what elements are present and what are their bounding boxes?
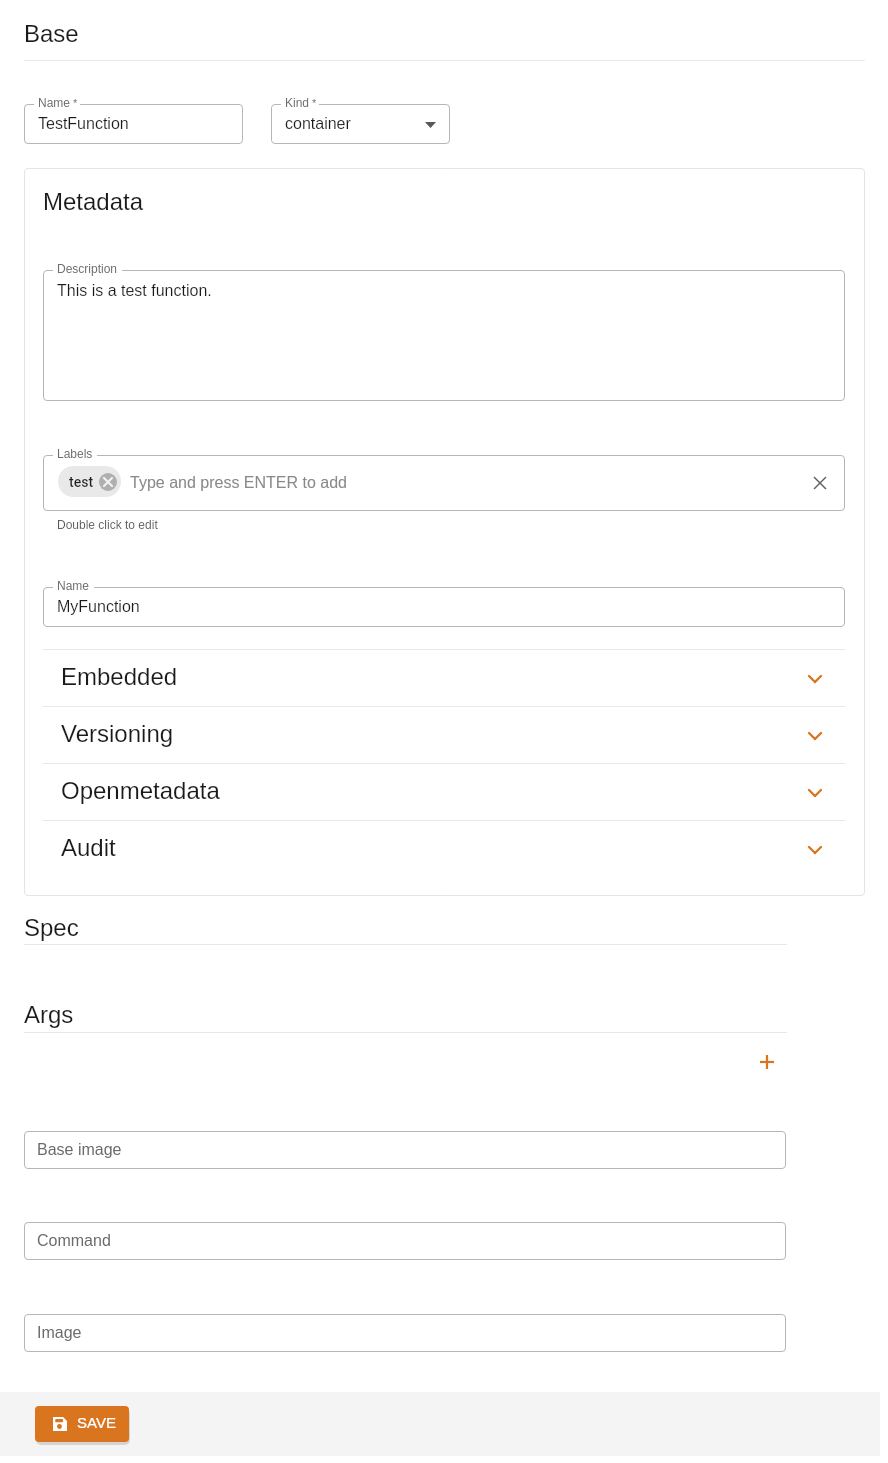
staticText: Args [24,1001,74,1028]
button[interactable]: Command [24,1222,786,1260]
staticText: * [73,97,78,109]
staticText: test [69,474,94,490]
staticText: Base [24,20,79,47]
staticText: Name [57,579,90,592]
button[interactable] [43,455,845,511]
staticText: Image [37,1324,82,1342]
staticText: Labels [57,447,93,460]
button[interactable] [271,104,450,144]
staticText: This is a test function. [57,282,212,300]
staticText: Kind [285,96,310,109]
button[interactable] [43,270,845,401]
staticText: container [285,115,351,133]
button[interactable]: test [58,466,121,497]
staticText: * [312,97,317,109]
button[interactable]: Base image [24,1131,786,1169]
staticText: MyFunction [57,598,140,616]
button[interactable]: Clear labels [806,469,834,497]
button[interactable]: Add argument [747,1042,787,1082]
button[interactable] [43,587,845,627]
button[interactable]: Versioning [43,706,845,763]
button[interactable] [24,104,243,144]
staticText: Name [38,96,71,109]
button[interactable]: SAVE [35,1406,129,1442]
staticText: Base image [37,1141,122,1159]
button[interactable]: Open kind dropdown [418,112,442,136]
staticText: Metadata [43,188,144,215]
button[interactable]: Embedded [43,649,845,706]
staticText: Versioning [61,720,174,747]
staticText: Double click to edit [57,518,158,531]
staticText: Type and press ENTER to add [130,474,347,492]
staticText: TestFunction [38,115,129,133]
staticText: Description [57,262,118,275]
staticText: Openmetadata [61,777,220,804]
button[interactable]: Audit [43,820,845,877]
staticText: Command [37,1232,111,1250]
staticText: Embedded [61,663,178,690]
staticText: Spec [24,914,79,941]
staticText: SAVE [77,1414,116,1431]
button[interactable]: Image [24,1314,786,1352]
button[interactable]: Openmetadata [43,763,845,820]
staticText: Audit [61,834,116,861]
